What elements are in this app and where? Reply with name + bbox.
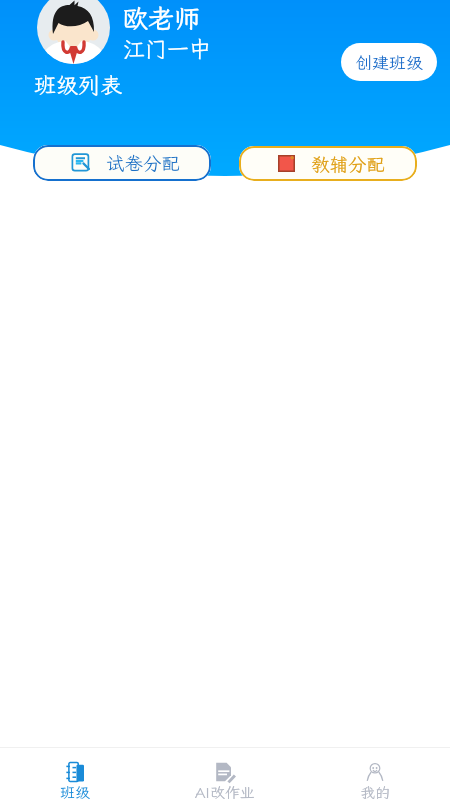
staticText: 试卷分配 (106, 151, 181, 175)
staticText: 欧老师 (122, 1, 201, 35)
button[interactable]: 教辅分配 (239, 146, 417, 181)
staticText: AI改作业 (195, 783, 255, 800)
button[interactable]: 试卷分配 (33, 145, 211, 181)
button[interactable]: 班级 (0, 748, 150, 800)
button[interactable]: 我的 (300, 748, 450, 800)
staticText: 我的 (360, 783, 391, 800)
button[interactable]: 创建班级 (341, 43, 437, 81)
staticText: 班级列表 (34, 70, 123, 99)
staticText: 江门一中 (123, 34, 212, 63)
staticText: 教辅分配 (311, 152, 386, 176)
button[interactable]: AI改作业 (150, 748, 300, 800)
staticText: 创建班级 (355, 51, 423, 73)
staticText: 班级 (60, 783, 91, 800)
